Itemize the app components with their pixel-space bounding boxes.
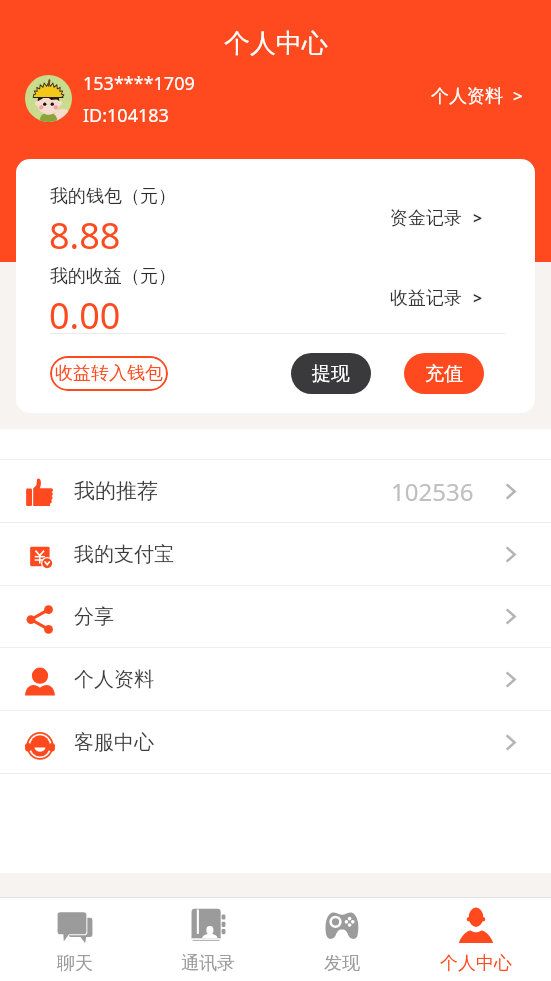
staticText: > [513, 84, 523, 107]
staticText: 提现 [312, 362, 350, 386]
button[interactable]: 资金记录 [390, 207, 483, 230]
staticText: 收益转入钱包 [55, 362, 163, 385]
staticText: 102536 [391, 475, 474, 508]
staticText: ID:104183 [83, 103, 169, 128]
button[interactable]: 发现 [275, 898, 409, 981]
staticText: 分享 [74, 604, 114, 629]
staticText: 我的钱包（元） [50, 185, 176, 208]
button[interactable]: 客服中心 [0, 711, 551, 774]
staticText: 个人资料 [74, 667, 154, 692]
staticText: 153****1709 [83, 71, 195, 96]
button[interactable]: 个人中心 [409, 898, 543, 981]
staticText: > [473, 207, 483, 229]
staticText: 我的推荐 [74, 478, 158, 504]
staticText: 个人中心 [440, 952, 512, 975]
button[interactable]: 个人资料 [431, 85, 523, 108]
button[interactable]: 提现 [291, 353, 371, 394]
staticText: 个人资料 [431, 85, 503, 108]
button[interactable]: 个人资料 [0, 648, 551, 711]
button[interactable]: 分享 [0, 586, 551, 648]
staticText: > [473, 287, 483, 309]
staticText: 8.88 [49, 211, 121, 260]
staticText: 收益记录 [390, 287, 462, 310]
button[interactable]: 我的推荐 [0, 460, 551, 523]
button[interactable]: 聊天 [8, 898, 141, 981]
staticText: 充值 [425, 362, 463, 386]
button[interactable]: 收益记录 [390, 287, 483, 310]
staticText: 资金记录 [390, 207, 462, 230]
staticText: 0.00 [49, 291, 121, 340]
staticText: 我的收益（元） [50, 265, 176, 288]
staticText: 个人中心 [224, 27, 328, 60]
button[interactable]: 我的支付宝 [0, 523, 551, 586]
button[interactable]: 通讯录 [141, 898, 275, 981]
button[interactable]: 收益转入钱包 [50, 356, 168, 391]
staticText: 我的支付宝 [74, 542, 174, 567]
staticText: 通讯录 [181, 952, 235, 975]
staticText: 聊天 [57, 952, 93, 975]
staticText: 客服中心 [74, 730, 154, 755]
button[interactable]: 充值 [404, 353, 484, 394]
staticText: 发现 [324, 952, 360, 975]
